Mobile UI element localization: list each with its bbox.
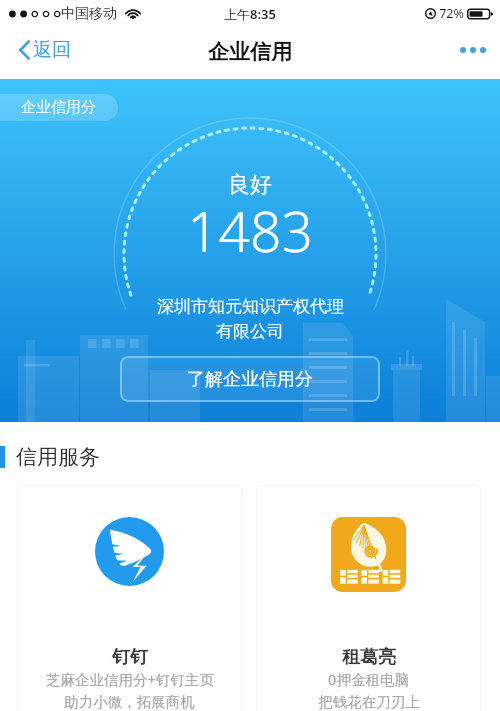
staticText: 企业信用	[208, 39, 292, 65]
button[interactable]: 企业信用分	[0, 94, 118, 121]
staticText: 钉钉	[112, 646, 148, 669]
button[interactable]: 钉钉	[17, 485, 242, 711]
staticText: 芝麻企业信用分+钉钉主页	[46, 669, 214, 689]
staticText: 把钱花在刀刃上	[318, 693, 420, 711]
button[interactable]: 了解企业信用分	[120, 356, 380, 402]
staticText: 72%	[439, 5, 464, 22]
staticText: 有限公司	[216, 321, 284, 342]
staticText: 上午8:35	[224, 5, 276, 23]
staticText: 0押金租电脑	[328, 669, 409, 689]
staticText: 租葛亮	[342, 646, 396, 669]
staticText: 中国移动	[61, 5, 117, 23]
staticText: 良好	[228, 171, 272, 199]
button[interactable]: 返回	[0, 32, 85, 68]
staticText: 了解企业信用分	[187, 368, 313, 391]
staticText: 深圳市知元知识产权代理	[157, 296, 344, 317]
staticText: 助力小微，拓展商机	[64, 693, 195, 711]
staticText: 信用服务	[16, 444, 100, 470]
staticText: 1483	[187, 193, 313, 268]
staticText: 企业信用分	[21, 98, 96, 117]
button[interactable]: 更多	[446, 34, 500, 66]
button[interactable]: 租葛亮	[256, 485, 481, 711]
staticText: 返回	[33, 38, 71, 62]
